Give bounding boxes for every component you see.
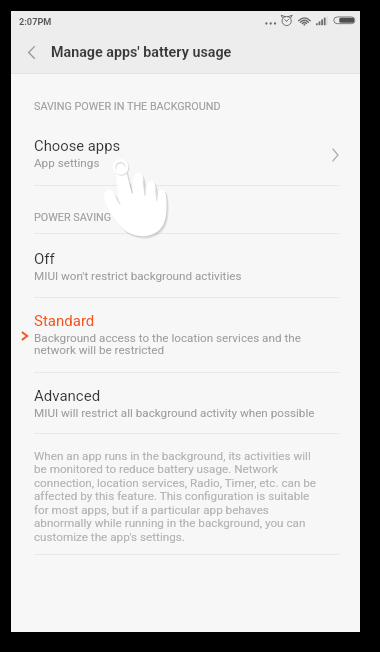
staticText: MIUI will restrict all background activi… xyxy=(34,406,315,420)
staticText: POWER SAVING xyxy=(34,211,112,224)
staticText: Advanced xyxy=(34,387,101,405)
staticText: connection, location services, Radio, Ti… xyxy=(34,476,317,490)
staticText: affected by this feature. This configura… xyxy=(34,489,310,503)
staticText: customize the app's settings. xyxy=(34,530,185,544)
staticText: Off xyxy=(34,250,55,268)
staticText: App settings xyxy=(34,156,100,170)
staticText: MIUI won't restrict background activitie… xyxy=(34,269,242,283)
staticText: 2:07PM xyxy=(19,16,52,27)
staticText: Choose apps xyxy=(34,137,121,154)
staticText: Standard xyxy=(34,312,95,330)
staticText: Background access to the location servic… xyxy=(34,331,301,345)
staticText: abnormally while running in the backgrou… xyxy=(34,516,306,530)
staticText: SAVING POWER IN THE BACKGROUND xyxy=(34,100,221,113)
staticText: When an app runs in the background, its … xyxy=(34,449,311,463)
button[interactable]: Standard xyxy=(11,305,360,373)
staticText: for most apps, but if a particular app b… xyxy=(34,503,269,517)
staticText: network will be restricted xyxy=(34,343,165,357)
button[interactable]: Navigate up xyxy=(11,32,51,73)
button[interactable]: Advanced xyxy=(11,380,360,434)
button[interactable]: Choose apps xyxy=(11,130,360,177)
staticText: Manage apps' battery usage xyxy=(51,44,232,61)
button[interactable]: Off xyxy=(11,243,360,297)
staticText: be monitored to reduce battery usage. Ne… xyxy=(34,462,278,476)
